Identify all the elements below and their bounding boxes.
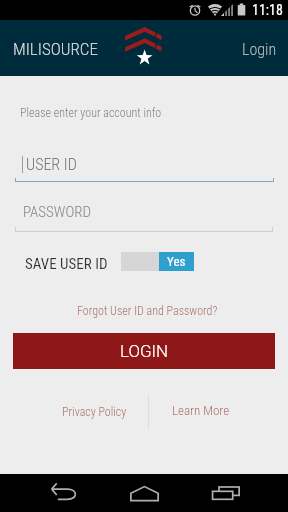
staticText: LOGIN <box>120 341 169 361</box>
staticText: Please enter your account info <box>20 106 162 120</box>
staticText: SAVE USER ID <box>25 255 108 273</box>
button[interactable]: Privacy Policy <box>54 399 135 425</box>
button[interactable]: USER ID <box>0 148 288 186</box>
staticText: Yes <box>167 254 186 269</box>
button[interactable]: Learn More <box>164 397 238 424</box>
button[interactable]: Back <box>40 474 88 512</box>
button[interactable]: Home <box>120 474 168 512</box>
button[interactable]: LOGIN <box>13 333 275 369</box>
button[interactable]: Forgot User ID and Password? <box>69 300 226 322</box>
button[interactable]: Yes <box>121 252 194 271</box>
button[interactable]: Recent apps <box>202 474 250 512</box>
button[interactable]: PASSWORD <box>0 199 288 237</box>
staticText: USER ID <box>26 155 77 174</box>
button[interactable]: Login <box>228 28 288 69</box>
staticText: MILISOURCE <box>13 39 98 59</box>
staticText: 11:18 <box>252 2 283 18</box>
staticText: PASSWORD <box>23 203 92 221</box>
